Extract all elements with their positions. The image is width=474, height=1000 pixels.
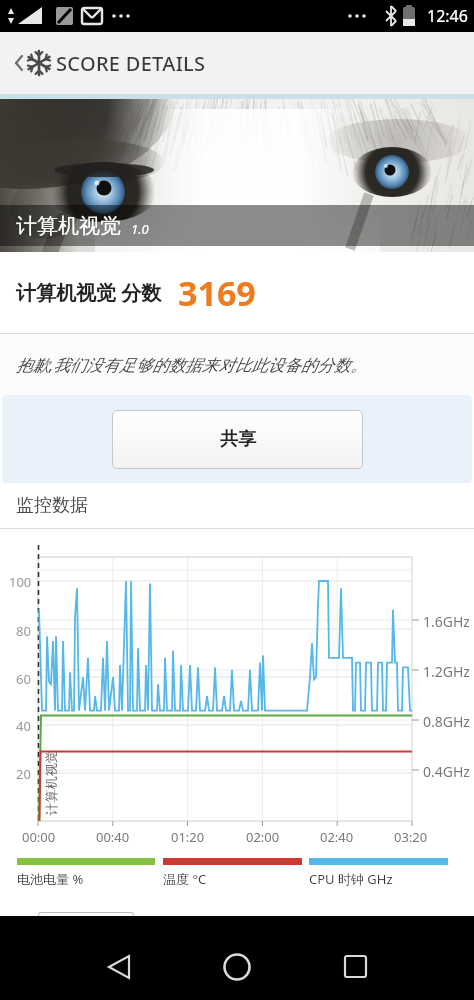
- staticText: 计算机视觉: [16, 213, 121, 239]
- staticText: 抱歉,我们没有足够的数据来对比此设备的分数。: [16, 353, 367, 376]
- button[interactable]: [158, 916, 316, 1000]
- staticText: 02:40: [320, 828, 354, 846]
- staticText: 02:00: [246, 828, 280, 846]
- staticText: 电池电量 %: [17, 870, 84, 888]
- button[interactable]: [0, 916, 158, 1000]
- staticText: SCORE DETAILS: [56, 50, 206, 77]
- staticText: 12:46: [427, 5, 468, 27]
- staticText: 温度 °C: [163, 870, 207, 888]
- staticText: 计算机视觉: [42, 750, 58, 815]
- button[interactable]: 共享: [112, 410, 363, 469]
- button[interactable]: [0, 32, 56, 94]
- staticText: CPU 时钟 GHz: [309, 870, 393, 888]
- staticText: 60: [16, 670, 31, 688]
- staticText: 100: [9, 573, 32, 591]
- staticText: 共享: [220, 428, 256, 451]
- staticText: 计算机视觉 分数: [16, 279, 162, 306]
- staticText: 00:00: [22, 828, 56, 846]
- staticText: 03:20: [394, 828, 428, 846]
- staticText: 3169: [178, 270, 256, 316]
- staticText: 40: [16, 717, 31, 735]
- button[interactable]: [316, 916, 474, 1000]
- staticText: 1.6GHz: [423, 612, 470, 631]
- staticText: 80: [16, 622, 31, 640]
- staticText: 监控数据: [16, 494, 88, 517]
- staticText: 0.8GHz: [423, 712, 470, 731]
- staticText: 1.2GHz: [423, 662, 470, 681]
- staticText: 1.0: [131, 220, 149, 238]
- staticText: 20: [16, 765, 31, 783]
- staticText: 01:20: [171, 828, 205, 846]
- staticText: 00:40: [96, 828, 130, 846]
- staticText: 0.4GHz: [423, 762, 470, 781]
